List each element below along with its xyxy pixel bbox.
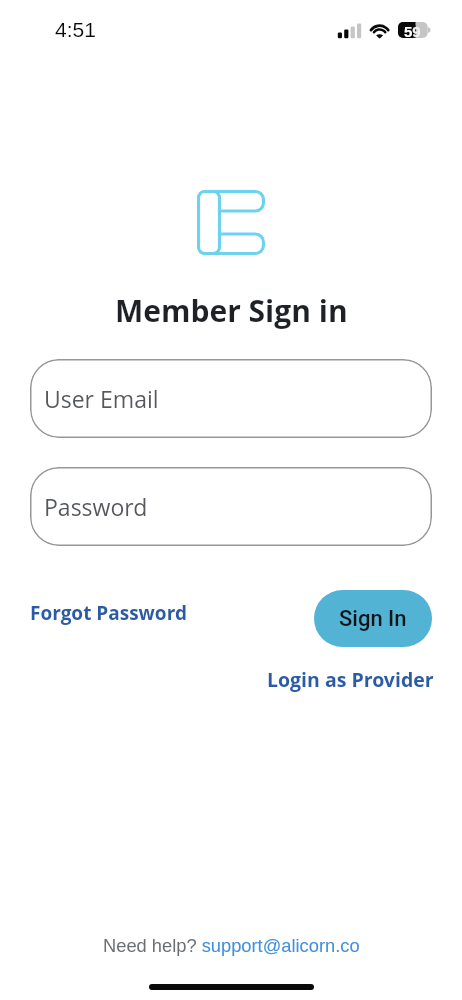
staticText: Forgot Password	[30, 600, 187, 626]
button[interactable]: Login as Provider	[267, 666, 434, 693]
other: Battery 59 percent	[398, 22, 433, 39]
staticText: 4:51	[55, 18, 96, 41]
staticText: 59	[404, 23, 421, 40]
staticText: Need help? support@alicorn.co	[103, 935, 360, 955]
button[interactable]: Need help? support@alicorn.co	[103, 935, 360, 955]
staticText: Sign In	[339, 606, 407, 632]
staticText: Password	[44, 491, 148, 522]
other: Cellular signal	[337, 23, 361, 39]
button[interactable]: Password	[30, 467, 432, 546]
button[interactable]: Sign In	[314, 590, 432, 647]
other: Wi-Fi	[369, 22, 391, 40]
button[interactable]: User Email	[30, 359, 432, 438]
button[interactable]: Forgot Password	[30, 600, 187, 626]
staticText: Login as Provider	[267, 666, 434, 693]
staticText: Member Sign in	[115, 290, 348, 331]
staticText: User Email	[44, 383, 159, 414]
